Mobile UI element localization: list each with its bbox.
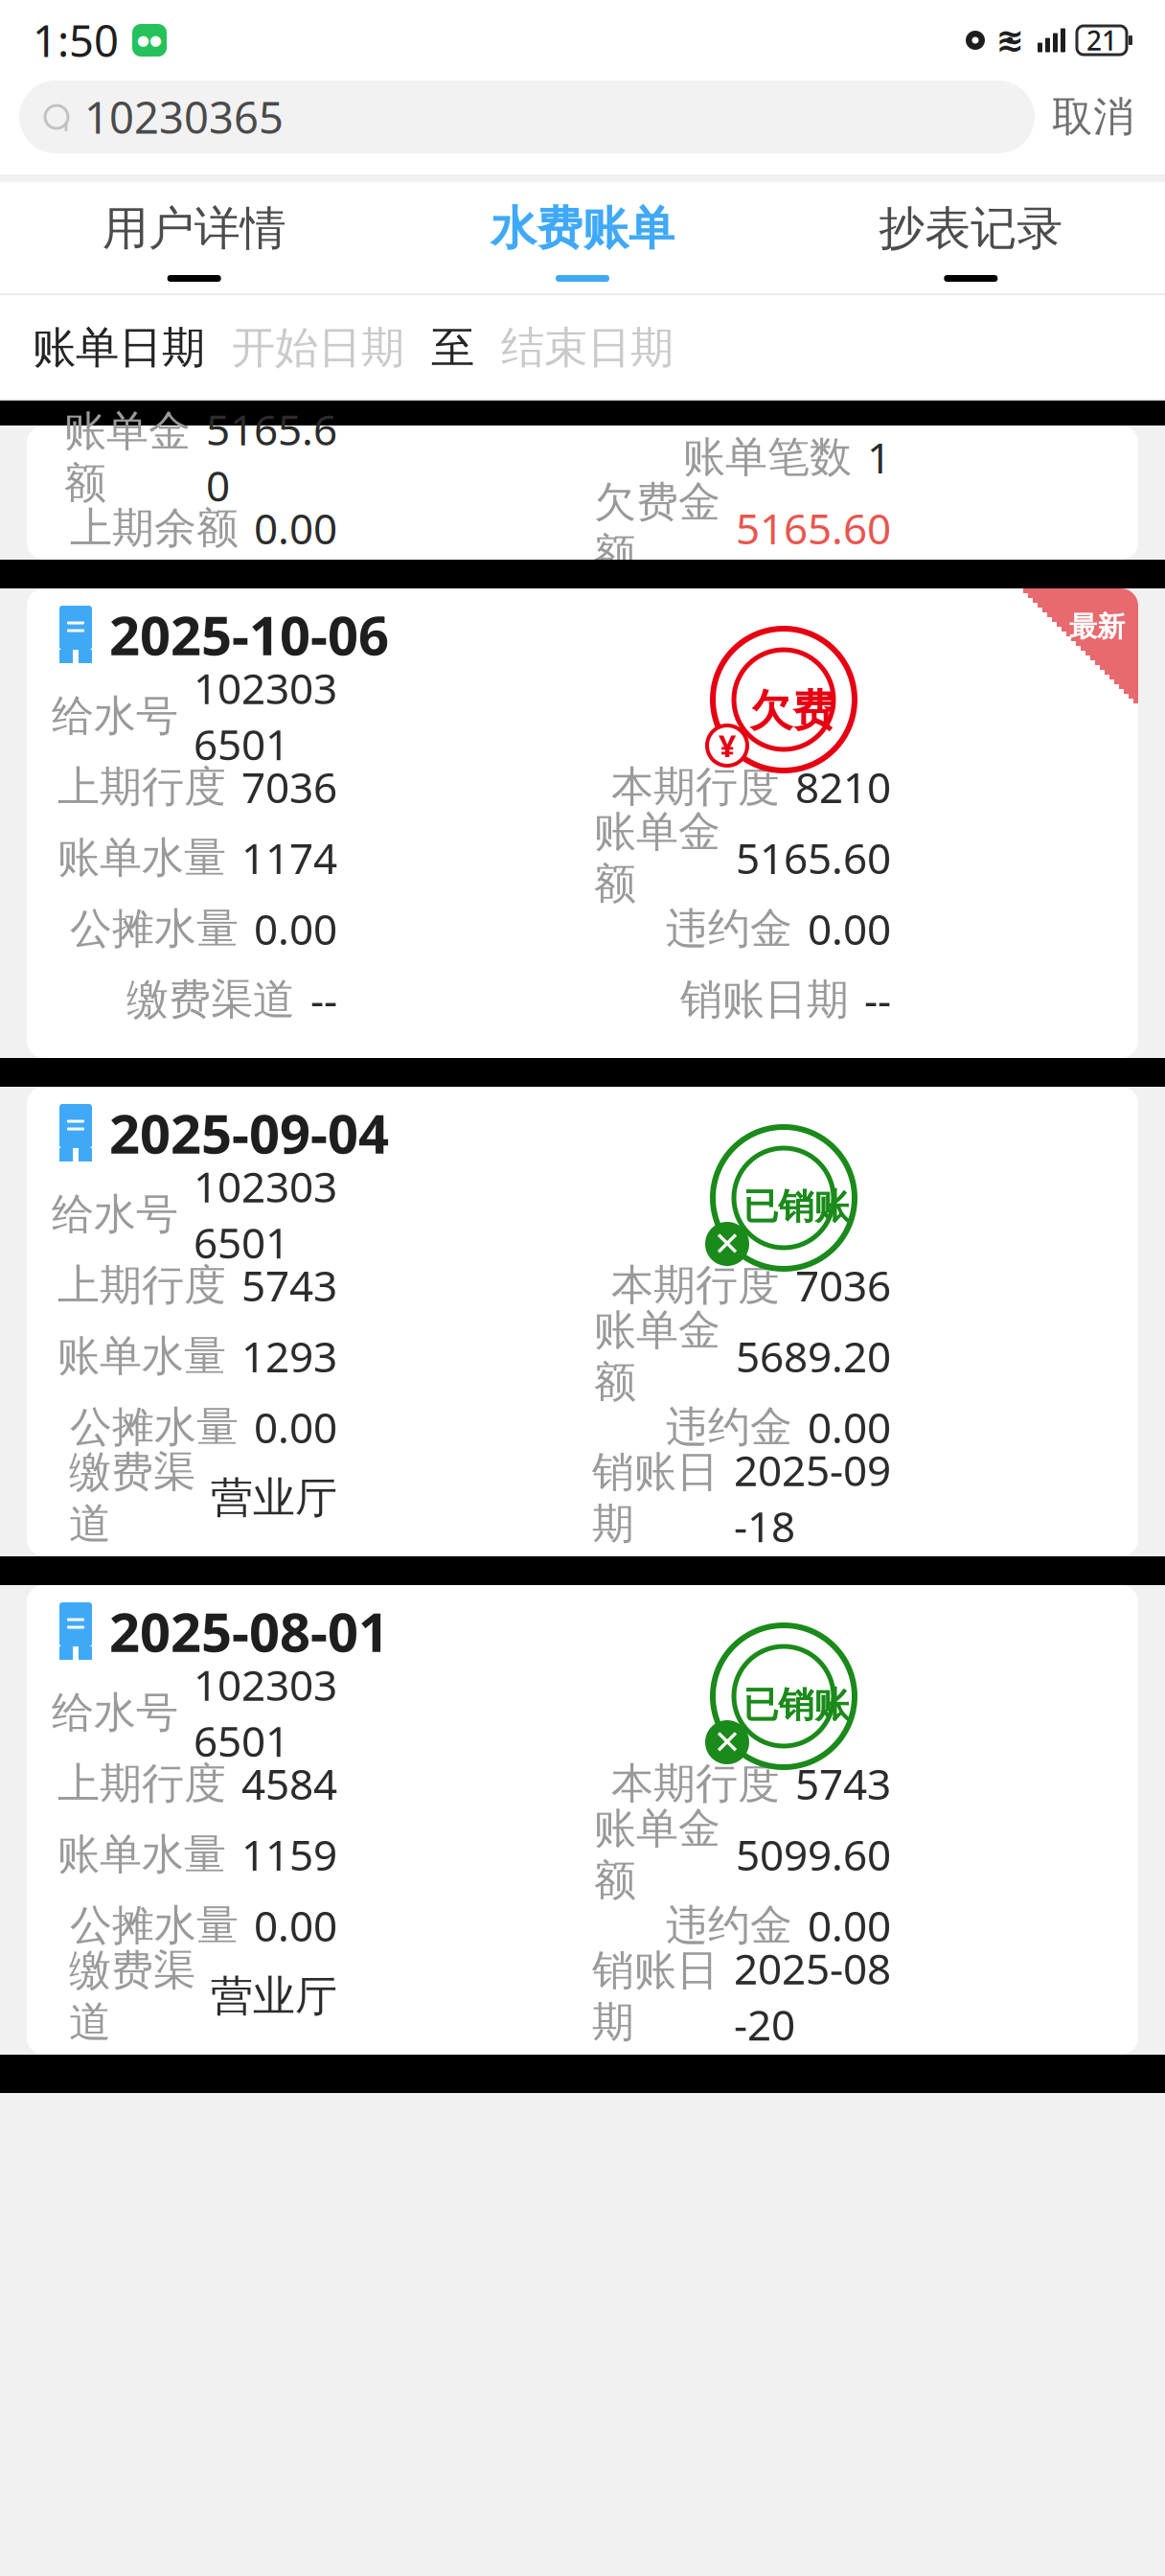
staticText: 1023036501 <box>194 1657 337 1769</box>
staticText: 0.00 <box>808 1897 891 1953</box>
staticText: 违约金 <box>666 903 792 954</box>
staticText: 销账日期 <box>680 974 849 1025</box>
staticText: 上期行度 <box>57 1758 226 1809</box>
staticText: 1174 <box>241 830 337 886</box>
staticText: 账单水量 <box>57 1828 226 1880</box>
staticText: 5165.60 <box>206 401 337 513</box>
staticText: ≋ <box>996 21 1024 59</box>
staticText: 缴费渠道 <box>69 1944 195 2048</box>
staticText: 用户详情 <box>102 200 286 257</box>
button[interactable]: 水费账单 <box>388 182 777 295</box>
button[interactable]: 2025-09-04 <box>0 1087 1165 1556</box>
staticText: 违约金 <box>666 1899 792 1951</box>
staticText: 欠费 <box>749 684 835 738</box>
staticText: 营业厅 <box>211 1472 337 1524</box>
button[interactable]: 开始日期 <box>205 321 431 375</box>
staticText: 账单水量 <box>57 1330 226 1382</box>
staticText: 账单金额 <box>594 1803 720 1906</box>
staticText: 8210 <box>795 759 891 815</box>
staticText: 上期行度 <box>57 1259 226 1311</box>
staticText: 账单金额 <box>594 1304 720 1408</box>
button[interactable]: 2025-08-01 <box>0 1585 1165 2055</box>
staticText: 0.00 <box>808 901 891 957</box>
staticText: 已销账 <box>743 1683 849 1727</box>
staticText: 10230365 <box>84 88 284 146</box>
button[interactable]: 取消 <box>1035 80 1152 153</box>
staticText: 21 <box>1086 22 1117 58</box>
staticText: 1 <box>867 429 891 485</box>
staticText: 1:50 <box>33 11 119 69</box>
staticText: 1159 <box>241 1826 337 1882</box>
staticText: 5743 <box>241 1257 337 1313</box>
button[interactable]: 结束日期 <box>474 321 700 375</box>
staticText: -- <box>864 972 891 1028</box>
staticText: 账单笔数 <box>683 431 852 483</box>
staticText: 7036 <box>241 759 337 815</box>
staticText: 本期行度 <box>611 1758 780 1809</box>
staticText: 给水号 <box>52 1188 178 1240</box>
staticText: 4584 <box>241 1755 337 1811</box>
staticText: 本期行度 <box>611 761 780 813</box>
staticText: ¥ <box>719 725 736 766</box>
staticText: 销账日期 <box>592 1446 719 1550</box>
staticText: 5165.60 <box>736 830 891 886</box>
staticText: 欠费金额 <box>594 476 720 580</box>
staticText: 2025-09-04 <box>109 1097 389 1168</box>
staticText: 2025-10-06 <box>109 599 389 670</box>
staticText: 公摊水量 <box>70 903 239 954</box>
button[interactable]: 2025-10-06 <box>0 588 1165 1058</box>
staticText: 账单金额 <box>594 806 720 910</box>
staticText: 给水号 <box>52 690 178 742</box>
staticText: 本期行度 <box>611 1259 780 1311</box>
staticText: 销账日期 <box>592 1944 719 2048</box>
staticText: 0.00 <box>254 1897 337 1953</box>
staticText: 账单金额 <box>64 405 191 509</box>
staticText: 最新 <box>1069 609 1125 644</box>
staticText: 上期行度 <box>57 761 226 813</box>
staticText: 营业厅 <box>211 1970 337 2022</box>
staticText: 公摊水量 <box>70 1899 239 1951</box>
button[interactable]: 抄表记录 <box>777 182 1165 295</box>
staticText: 0.00 <box>254 901 337 957</box>
staticText: 0.00 <box>254 1399 337 1455</box>
button[interactable]: 用户详情 <box>0 182 388 295</box>
staticText: 违约金 <box>666 1401 792 1453</box>
staticText: ✕ <box>713 1723 741 1761</box>
staticText: 已销账 <box>743 1185 849 1229</box>
staticText: 取消 <box>1052 92 1134 142</box>
staticText: 账单水量 <box>57 832 226 884</box>
staticText: ✕ <box>713 1225 741 1263</box>
staticText: 账单日期 <box>33 321 205 375</box>
staticText: 缴费渠道 <box>126 974 295 1025</box>
staticText: 缴费渠道 <box>69 1446 195 1550</box>
staticText: 5743 <box>795 1755 891 1811</box>
staticText: 5689.20 <box>736 1328 891 1384</box>
staticText: 水费账单 <box>491 200 674 257</box>
staticText: 0.00 <box>808 1399 891 1455</box>
staticText: 2025-08-01 <box>109 1595 389 1667</box>
staticText: 5165.60 <box>736 500 891 556</box>
staticText: 至 <box>431 321 474 375</box>
staticText: 7036 <box>795 1257 891 1313</box>
staticText: 公摊水量 <box>70 1401 239 1453</box>
staticText: 上期余额 <box>70 502 239 554</box>
staticText: 0.00 <box>254 500 337 556</box>
staticText: 1293 <box>241 1328 337 1384</box>
staticText: ●● <box>137 32 162 48</box>
staticText: 1023036501 <box>194 1158 337 1270</box>
staticText: 给水号 <box>52 1687 178 1738</box>
staticText: 5099.60 <box>736 1826 891 1882</box>
staticText: 1023036501 <box>194 660 337 772</box>
button[interactable]: 10230365 <box>19 80 1035 153</box>
staticText: 开始日期 <box>232 321 404 375</box>
staticText: 2025-08-20 <box>734 1940 891 2052</box>
staticText: 结束日期 <box>501 321 674 375</box>
staticText: 抄表记录 <box>879 200 1063 257</box>
staticText: -- <box>310 972 337 1028</box>
staticText: 2025-09-18 <box>734 1442 891 1554</box>
